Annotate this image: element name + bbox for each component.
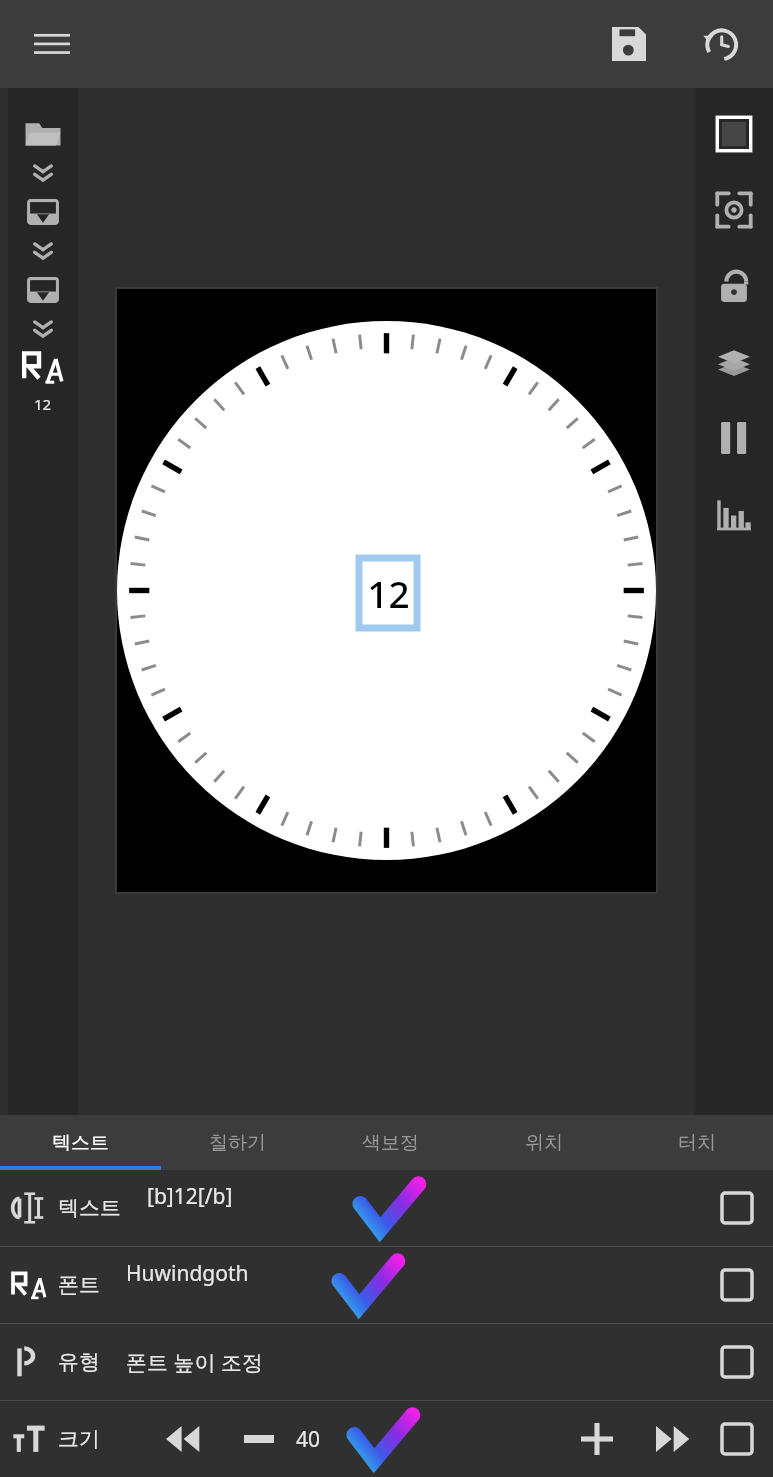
button[interactable]: Layers [706,334,762,390]
button[interactable]: Size toggle [700,1401,773,1477]
button[interactable]: 텍스트 [0,1115,161,1170]
staticText: 12 [367,568,410,618]
button[interactable]: 칠하기 [161,1115,314,1170]
button[interactable]: 12 [117,289,656,892]
staticText: 위치 [525,1131,563,1155]
staticText: 크기 [58,1426,100,1452]
button[interactable]: 유형 [0,1324,773,1400]
button[interactable]: Fast decrease [156,1412,210,1466]
button[interactable]: Fast increase [646,1412,700,1466]
button[interactable]: 텍스트 [0,1170,773,1246]
button[interactable]: 위치 [467,1115,620,1170]
staticText: 텍스트 [58,1195,121,1221]
button[interactable]: Layer 2 [15,262,71,318]
button[interactable]: Focus [706,182,762,238]
button[interactable]: Text layer [16,340,70,394]
staticText: 칠하기 [209,1131,266,1155]
button[interactable]: 텍스트 toggle [700,1170,773,1246]
staticText: 텍스트 [52,1131,109,1155]
staticText: 12 [34,394,52,414]
button[interactable]: 터치 [620,1115,773,1170]
staticText: 폰트 [58,1272,100,1298]
button[interactable]: 폰트 toggle [700,1247,773,1323]
button[interactable]: Pause [706,410,762,466]
button[interactable]: 폰트 [0,1247,773,1323]
button[interactable]: History [685,8,757,80]
button[interactable]: Lock [706,258,762,314]
button[interactable]: Save [593,8,665,80]
staticText: 터치 [678,1131,716,1155]
button[interactable]: 색보정 [314,1115,467,1170]
button[interactable]: 유형 toggle [700,1324,773,1400]
staticText: [b]12[/b] [147,1182,233,1211]
button[interactable]: Decrease [232,1412,286,1466]
staticText: 유형 [58,1349,100,1375]
staticText: 40 [296,1425,321,1454]
staticText: Huwindgoth [126,1259,249,1288]
button[interactable]: Stats [706,486,762,542]
button[interactable]: Layer 1 [15,184,71,240]
button[interactable]: Shape [706,106,762,162]
button[interactable]: Open folder [15,106,71,162]
staticText: 폰트 높이 조정 [126,1348,263,1377]
button[interactable]: Menu [16,8,88,80]
button[interactable]: Increase [570,1412,624,1466]
staticText: 색보정 [362,1131,419,1155]
